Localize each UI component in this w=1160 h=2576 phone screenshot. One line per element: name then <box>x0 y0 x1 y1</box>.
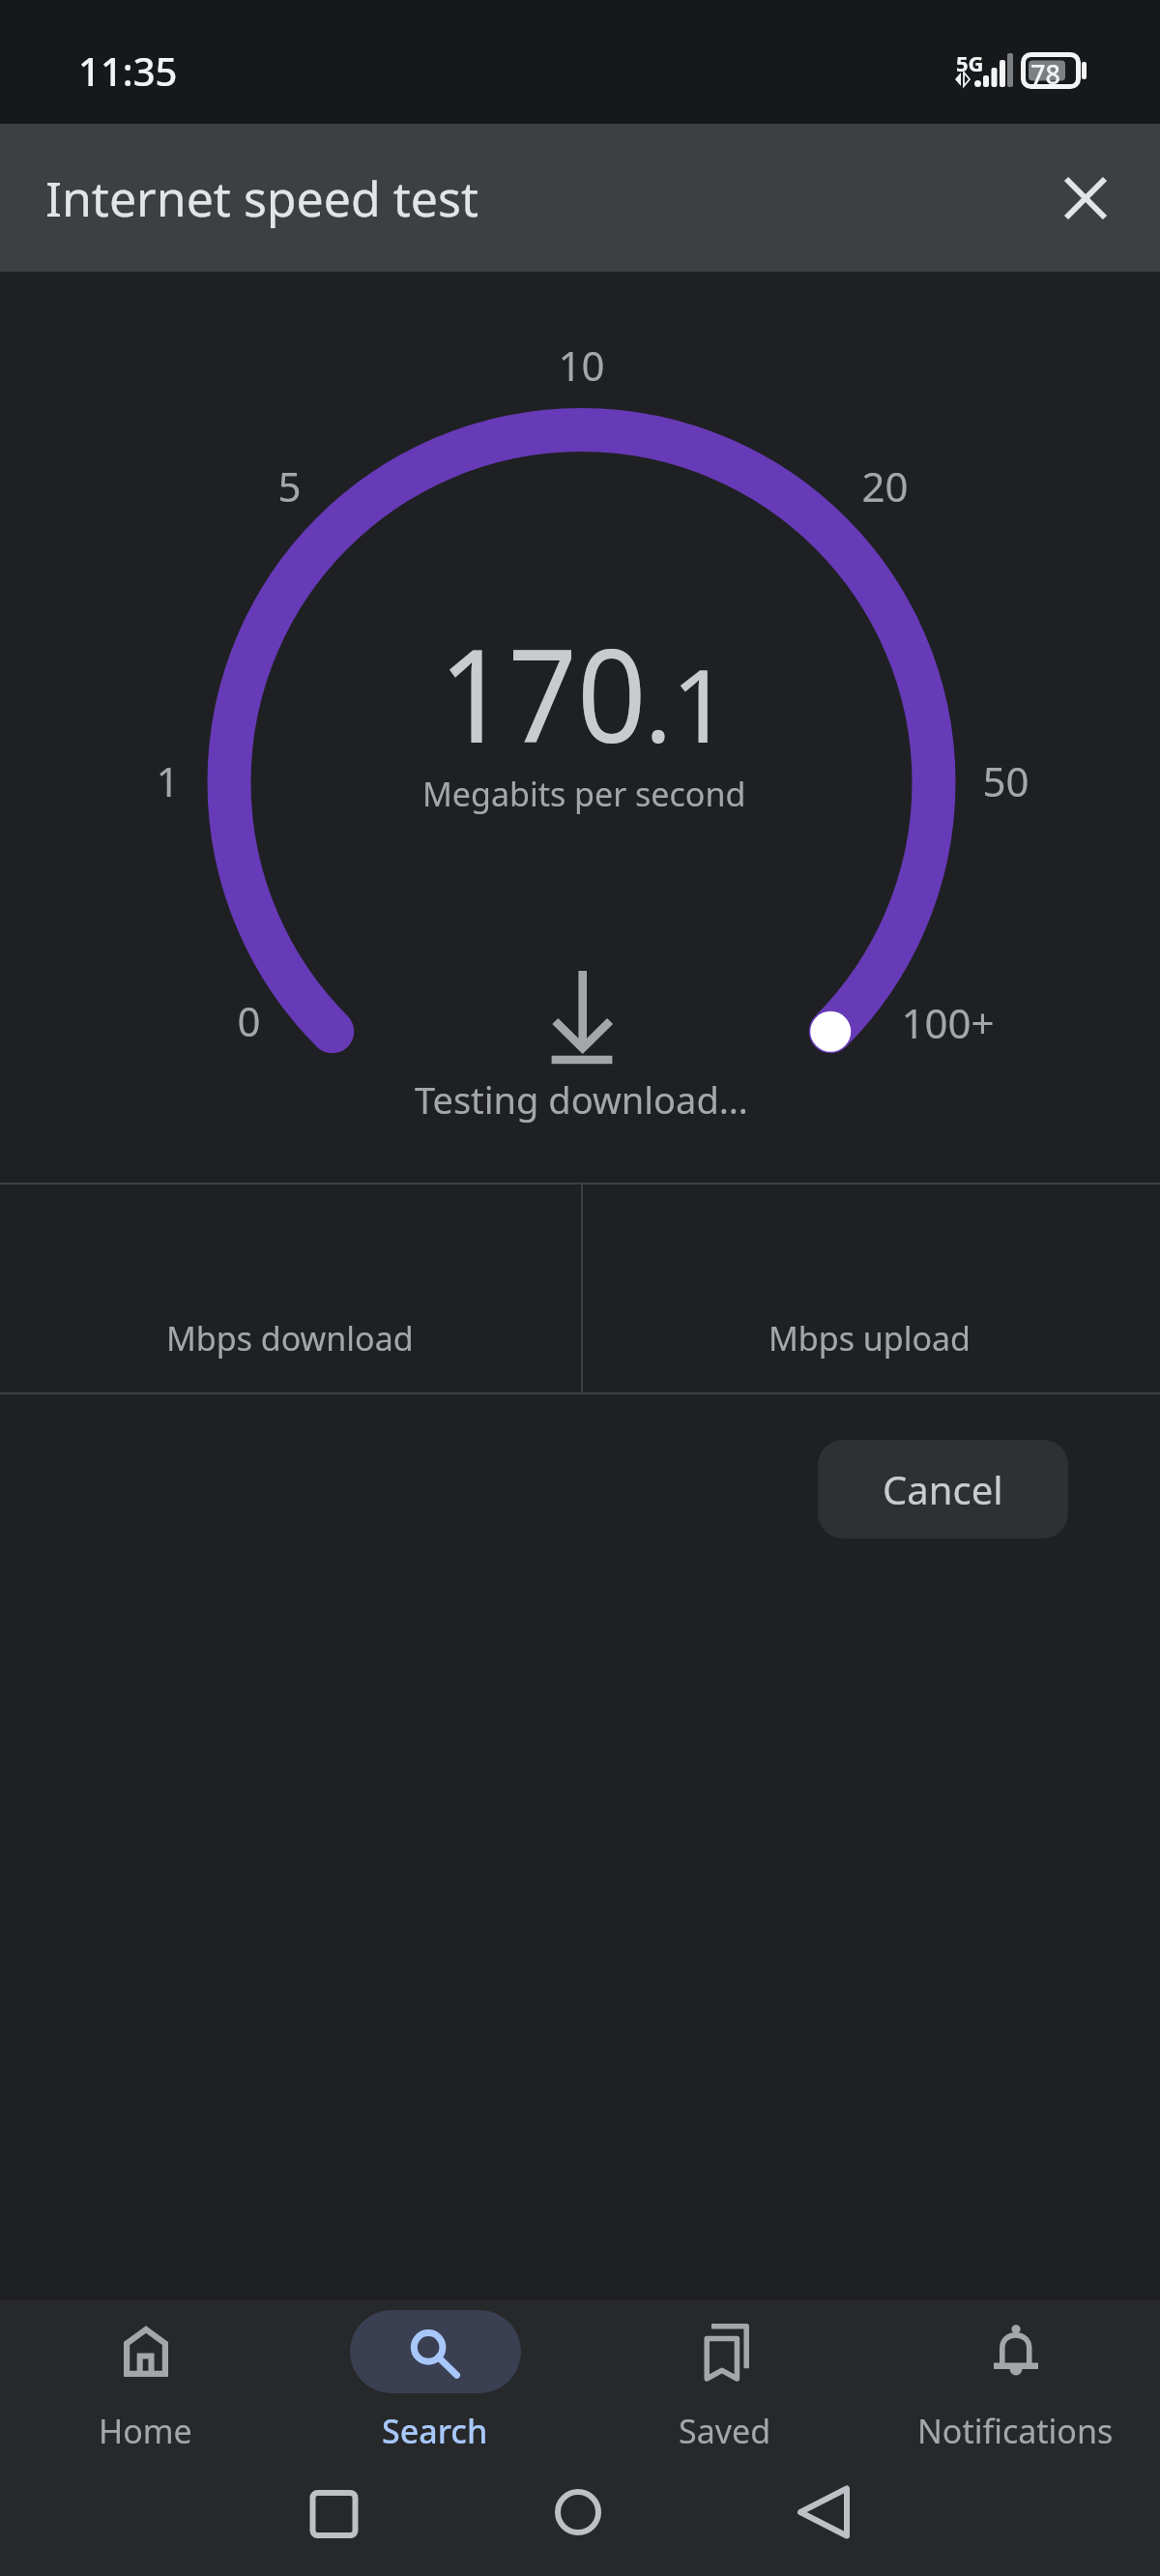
staticText: Internet speed test <box>45 165 478 231</box>
button[interactable]: Close <box>1043 156 1128 241</box>
button[interactable]: Search <box>290 2300 580 2455</box>
button[interactable]: Cancel <box>818 1440 1068 1538</box>
staticText: Saved <box>679 2409 771 2453</box>
staticText: 50 <box>982 753 1029 808</box>
staticText: 11:35 <box>78 44 178 97</box>
button[interactable]: Mbps upload <box>580 1185 1160 1392</box>
staticText: Search <box>382 2409 488 2453</box>
staticText: Megabits per second <box>422 772 746 816</box>
button[interactable]: Mbps download <box>0 1185 580 1392</box>
button[interactable]: Saved <box>580 2300 870 2455</box>
staticText: 170 <box>439 605 647 780</box>
staticText: 0 <box>237 993 261 1048</box>
staticText: 78 <box>1030 56 1060 92</box>
button[interactable]: Notifications <box>870 2300 1160 2455</box>
staticText: Mbps upload <box>768 1316 971 1361</box>
staticText: 20 <box>861 458 909 513</box>
staticText: .1 <box>645 635 730 773</box>
staticText: 5 <box>277 458 302 513</box>
staticText: Notifications <box>917 2409 1114 2453</box>
staticText: Cancel <box>883 1463 1003 1515</box>
staticText: Testing download… <box>415 1074 748 1125</box>
staticText: 1 <box>156 753 180 808</box>
button[interactable]: Home <box>0 2300 290 2455</box>
staticText: 5G <box>956 48 984 77</box>
staticText: Home <box>99 2409 192 2453</box>
staticText: 10 <box>558 337 605 393</box>
staticText: 100+ <box>901 995 995 1050</box>
staticText: Mbps download <box>166 1316 414 1361</box>
